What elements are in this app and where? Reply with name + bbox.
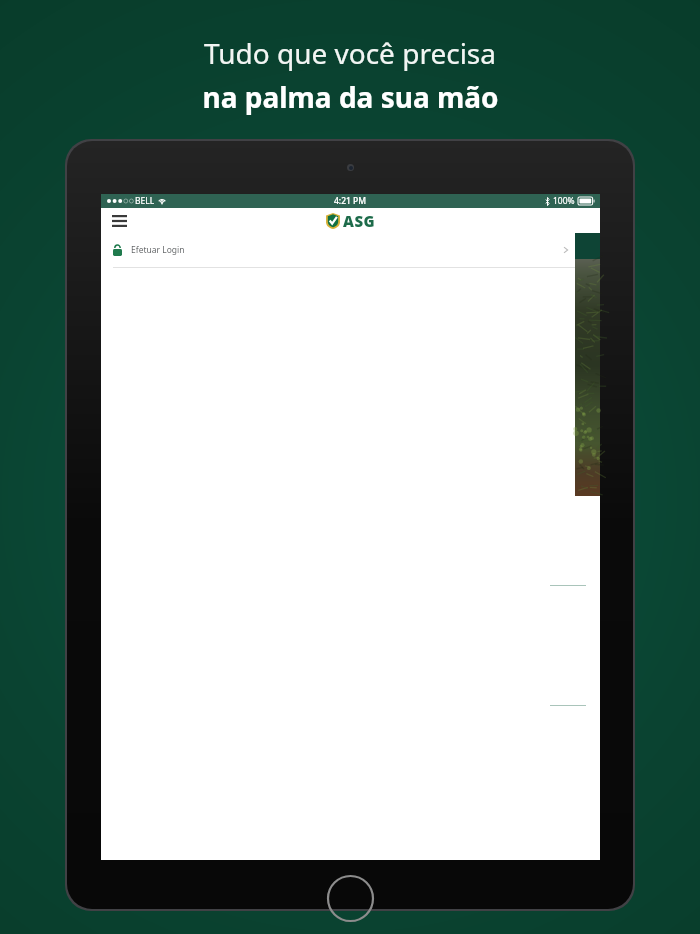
button[interactable]: ASG: [326, 211, 376, 231]
staticText: ASG: [343, 211, 376, 231]
staticText: BELL: [135, 195, 155, 207]
staticText: Efetuar Login: [131, 244, 185, 256]
button[interactable]: Home: [326, 874, 375, 923]
staticText: Tudo que você precisa: [204, 34, 496, 72]
staticText: 4:21 PM: [334, 195, 367, 207]
button[interactable]: Menu: [107, 210, 131, 232]
button[interactable]: Efetuar Login: [101, 233, 600, 267]
staticText: 100%: [553, 195, 575, 207]
staticText: na palma da sua mão: [202, 78, 499, 116]
